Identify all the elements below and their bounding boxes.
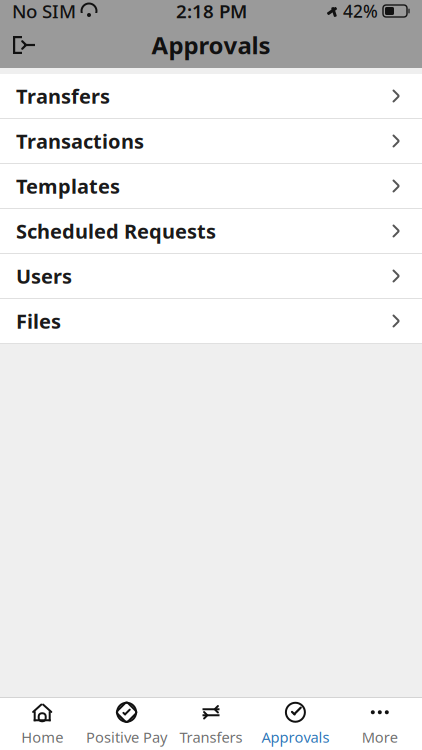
button[interactable]: Users — [0, 254, 422, 298]
staticText: Transfers — [16, 83, 110, 109]
staticText: Files — [16, 308, 61, 334]
button[interactable]: Transfers — [169, 698, 253, 750]
staticText: 42% — [343, 0, 378, 22]
staticText: More — [362, 727, 398, 747]
staticText: Templates — [16, 173, 120, 199]
staticText: 2:18 PM — [176, 0, 247, 23]
staticText: Transfers — [179, 727, 242, 747]
button[interactable]: Transactions — [0, 119, 422, 163]
button[interactable]: Positive Pay — [84, 698, 169, 750]
button[interactable]: Templates — [0, 164, 422, 208]
button[interactable]: Files — [0, 299, 422, 343]
button[interactable]: Approvals — [253, 698, 338, 750]
staticText: No SIM — [12, 0, 76, 23]
staticText: Positive Pay — [86, 727, 167, 747]
staticText: Transactions — [16, 128, 144, 154]
staticText: Scheduled Requests — [16, 218, 216, 244]
staticText: Home — [21, 727, 63, 747]
staticText: Users — [16, 263, 72, 289]
button[interactable]: Scheduled Requests — [0, 209, 422, 253]
staticText: Approvals — [261, 727, 329, 747]
button[interactable]: More — [338, 698, 422, 750]
button[interactable]: Transfers — [0, 74, 422, 118]
button[interactable]: Home — [0, 698, 84, 750]
staticText: Approvals — [151, 29, 270, 61]
button[interactable]: Sign out — [0, 22, 46, 68]
